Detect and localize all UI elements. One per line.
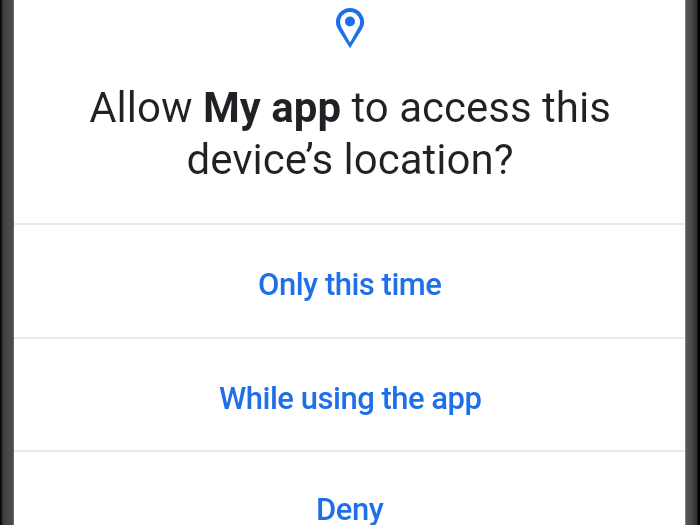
button[interactable]: Deny	[0, 452, 700, 525]
button[interactable]: Only this time	[0, 225, 700, 337]
staticText: Only this time	[258, 266, 442, 302]
staticText: Allow My app to access this device’s loc…	[0, 83, 700, 184]
staticText: Deny	[316, 491, 384, 525]
button[interactable]: While using the app	[0, 339, 700, 450]
staticText: While using the app	[219, 380, 482, 416]
